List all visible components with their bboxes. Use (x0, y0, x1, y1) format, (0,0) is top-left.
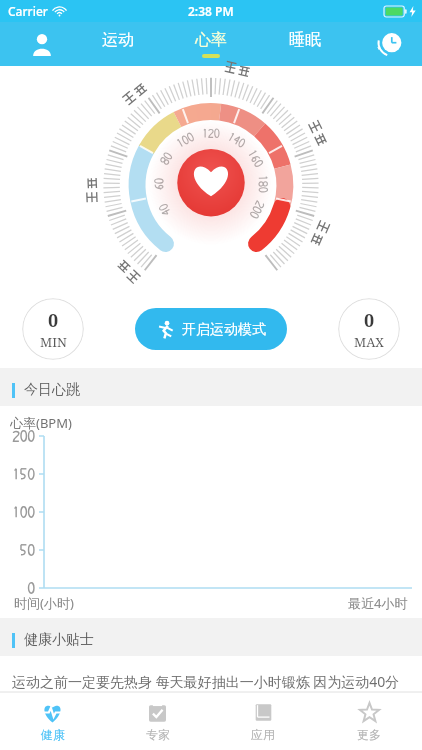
staticText: 心率(BPM) (10, 414, 72, 432)
button[interactable]: 0 (22, 298, 84, 360)
staticText: 睡眠 (289, 30, 321, 50)
button[interactable]: 专家 (105, 692, 210, 750)
button[interactable]: 开始测量 (151, 184, 271, 302)
button[interactable]: History (360, 22, 422, 66)
button[interactable]: 心率 (166, 22, 256, 66)
button[interactable]: Profile (0, 22, 84, 66)
staticText: 运动之前一定要先热身 每天最好抽出一小时锻炼 因为运动40分 (12, 672, 400, 691)
button[interactable]: 开启运动模式 (135, 308, 287, 350)
staticText: 心率 (195, 30, 227, 50)
staticText: MIN (40, 333, 67, 351)
button[interactable]: 健康 (0, 692, 105, 750)
button[interactable]: 睡眠 (260, 22, 350, 66)
button[interactable]: 0 (338, 298, 400, 360)
staticText: 最近4小时 (348, 594, 408, 612)
staticText: 0 (364, 308, 375, 333)
staticText: 时间(小时) (14, 594, 74, 612)
button[interactable]: 应用 (210, 692, 316, 750)
staticText: 0 (48, 308, 59, 333)
staticText: 专家 (146, 727, 170, 742)
staticText: 健康 (41, 727, 65, 742)
button[interactable]: 更多 (316, 692, 422, 750)
button[interactable]: 运动 (73, 22, 163, 66)
staticText: 开启运动模式 (182, 321, 266, 339)
staticText: 更多 (357, 727, 381, 742)
staticText: 健康小贴士 (24, 631, 94, 649)
staticText: 运动 (102, 30, 134, 50)
staticText: 2:38 PM (188, 3, 234, 19)
staticText: MAX (354, 333, 384, 351)
staticText: 应用 (251, 727, 275, 742)
staticText: Carrier (8, 3, 48, 19)
staticText: 今日心跳 (24, 381, 80, 399)
